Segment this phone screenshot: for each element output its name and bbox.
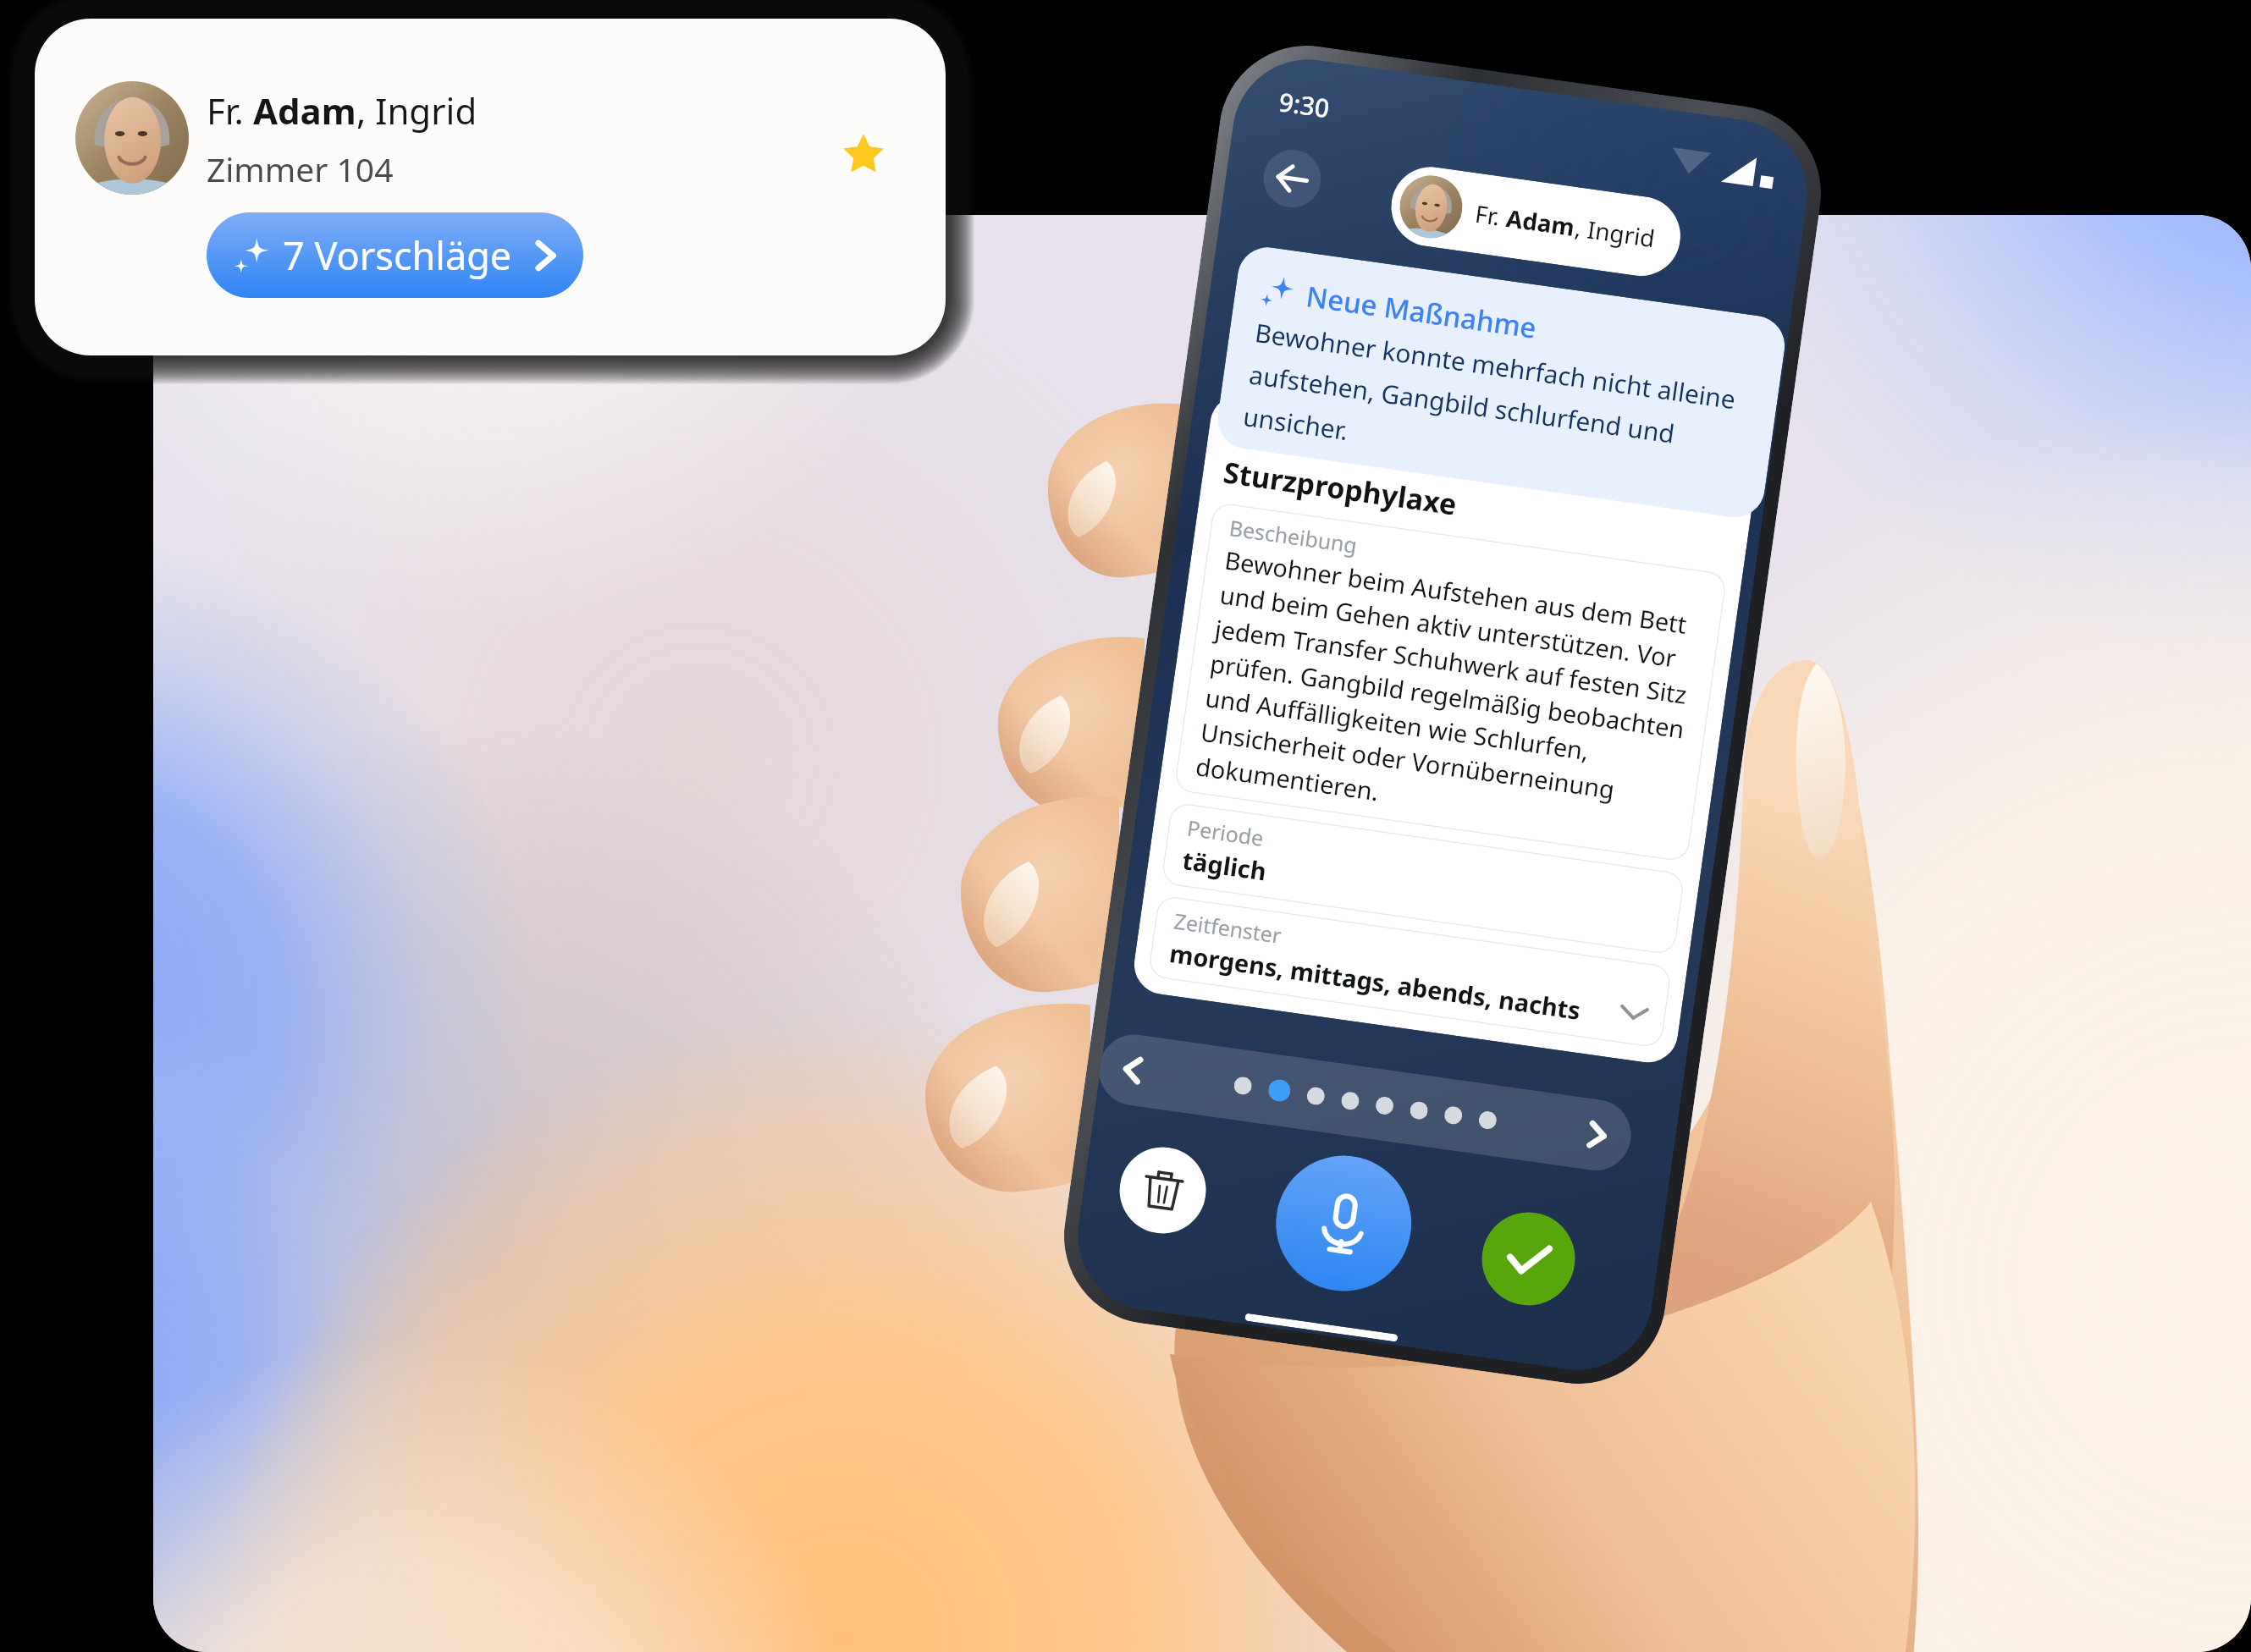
button[interactable]: Confirm [1476,1206,1581,1311]
button[interactable]: Fr. [35,19,946,355]
button[interactable]: Previous [1108,1044,1159,1096]
staticText: Adam [253,86,356,135]
staticText: 7 Vorschläge [283,229,512,281]
staticText: Neue Maßnahme [1304,277,1539,347]
button[interactable]: Fr. [1386,162,1685,281]
staticText: morgens, mittags, abends, nachts [1167,936,1583,1026]
staticText: Zeitfenster [1172,906,1284,949]
staticText: Bewohner beim Aufstehen aus dem Bett und… [1194,543,1704,850]
button[interactable]: Back [1260,146,1325,211]
staticText: Bescheibung [1228,513,1359,559]
staticText: Sturzprophylaxe [1221,452,1459,524]
staticText: Zimmer 104 [207,146,394,191]
staticText: Fr. [207,86,253,135]
staticText: , Ingrid [356,86,477,135]
staticText: Bewohner konnte mehrfach nicht alleine a… [1241,315,1764,504]
button[interactable]: Delete [1114,1142,1212,1239]
staticText: 9:30 [1277,84,1332,126]
button[interactable]: 7 Vorschläge [207,212,583,298]
staticText: Adam [1504,201,1577,243]
button[interactable]: Record [1267,1147,1420,1300]
staticText: täglich [1181,843,1269,888]
staticText: Periode [1185,813,1266,852]
button[interactable]: Next [1571,1109,1622,1161]
staticText: , Ingrid [1573,211,1657,254]
staticText: Fr. [1473,197,1509,233]
